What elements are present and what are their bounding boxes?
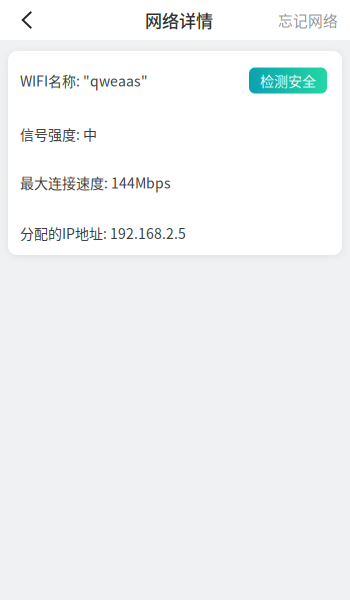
staticText: 检测安全 <box>260 70 316 91</box>
staticText: 忘记网络 <box>278 9 338 31</box>
button[interactable]: 检测安全 <box>249 67 330 93</box>
staticText: 信号强度: 中 <box>20 124 97 144</box>
staticText: WIFI名称: "qweaas" <box>20 70 148 91</box>
staticText: 分配的IP地址: 192.168.2.5 <box>20 223 186 243</box>
button[interactable]: Back <box>0 0 48 40</box>
button[interactable]: 忘记网络 <box>278 0 350 40</box>
staticText: 网络详情 <box>145 8 213 32</box>
staticText: 最大连接速度: 144Mbps <box>20 172 171 193</box>
